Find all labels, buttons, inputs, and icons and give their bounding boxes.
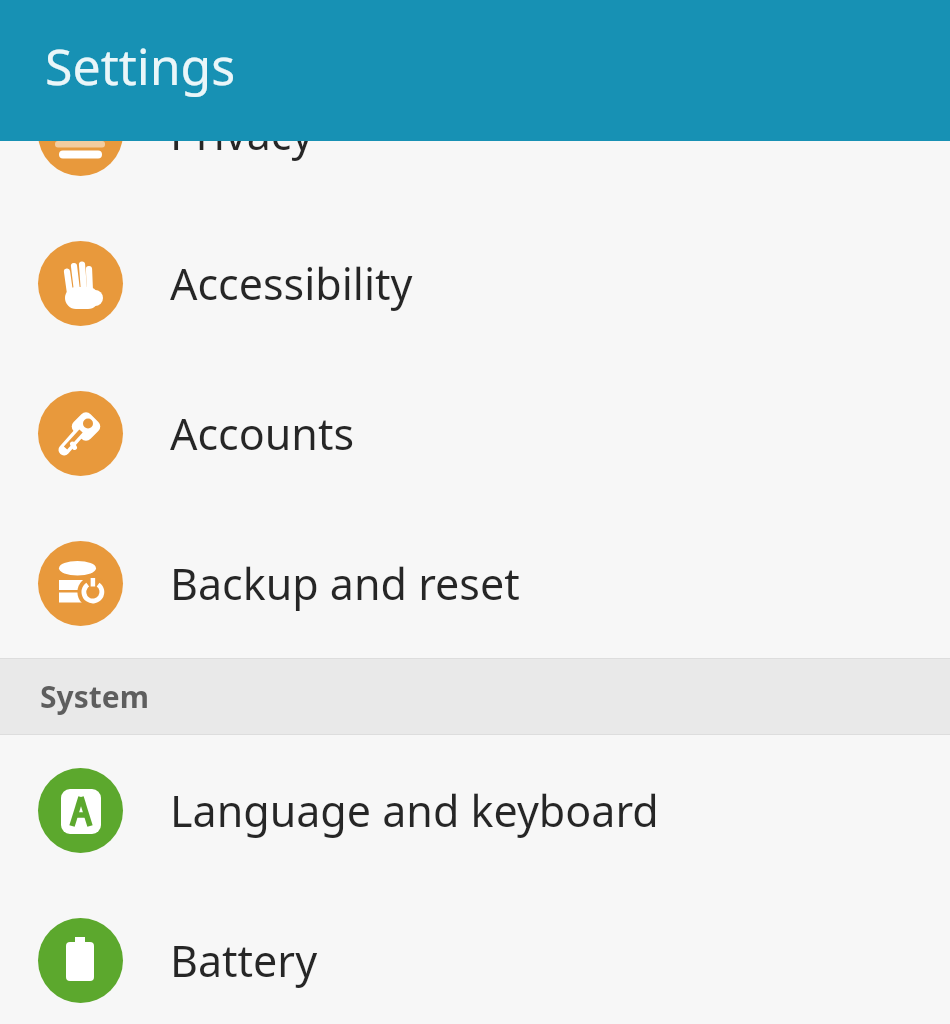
staticText: Battery (170, 931, 318, 990)
staticText: System (40, 676, 149, 717)
staticText: Settings (45, 32, 236, 100)
staticText: Accessibility (170, 254, 413, 313)
staticText: Accounts (170, 404, 355, 463)
button[interactable]: Language and keyboard (0, 735, 950, 885)
button[interactable]: Battery (0, 885, 950, 1024)
staticText: Privacy (170, 104, 314, 163)
button[interactable]: Backup and reset (0, 508, 950, 658)
staticText: Backup and reset (170, 554, 520, 613)
button[interactable]: Accounts (0, 358, 950, 508)
button[interactable]: Accessibility (0, 208, 950, 358)
staticText: Language and keyboard (170, 781, 659, 840)
button[interactable]: Privacy (0, 58, 950, 208)
